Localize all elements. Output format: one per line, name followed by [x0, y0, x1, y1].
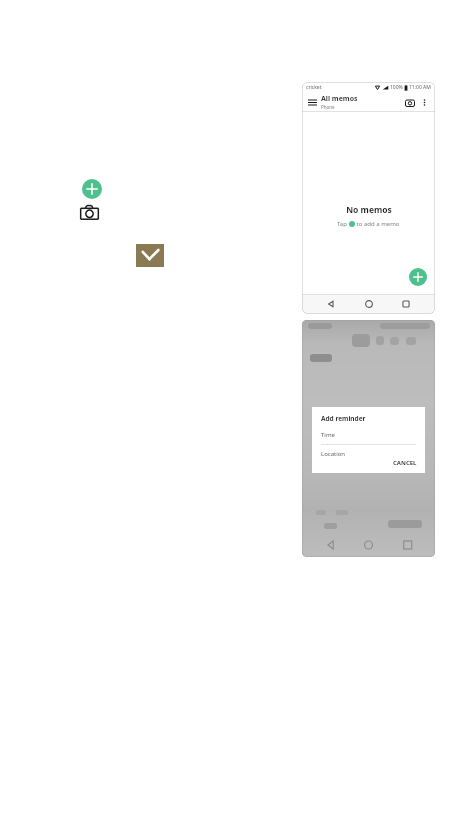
staticText: Phone: [321, 104, 335, 110]
button[interactable]: Camera: [403, 96, 416, 109]
button[interactable]: More options: [418, 96, 431, 109]
button[interactable]: Add memo: [409, 268, 427, 286]
staticText: cricket: [306, 84, 322, 91]
button[interactable]: Open navigation drawer: [306, 96, 318, 108]
button[interactable]: Camera: [79, 202, 100, 223]
staticText: 11:00 AM: [409, 84, 431, 91]
button[interactable]: Recent apps: [398, 296, 414, 312]
staticText: All memos: [321, 94, 358, 104]
staticText: CANCEL: [393, 459, 417, 467]
staticText: to add a memo: [355, 220, 400, 228]
staticText: 100%: [390, 84, 403, 91]
button[interactable]: Add memo: [82, 179, 102, 199]
staticText: No memos: [346, 204, 392, 216]
button[interactable]: CANCEL: [393, 459, 425, 473]
staticText: Location: [321, 450, 346, 458]
staticText: Add reminder: [321, 414, 366, 423]
button[interactable]: Time: [312, 431, 425, 439]
button[interactable]: Home: [361, 296, 377, 312]
staticText: Time: [321, 431, 335, 439]
button[interactable]: Location: [312, 450, 425, 458]
staticText: Tap: [337, 220, 349, 228]
button[interactable]: Confirm: [136, 244, 164, 267]
button[interactable]: Back: [323, 296, 339, 312]
